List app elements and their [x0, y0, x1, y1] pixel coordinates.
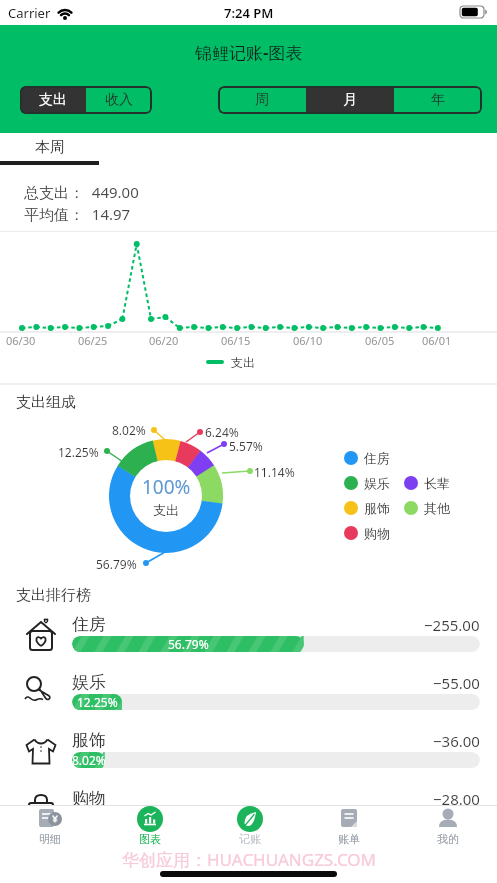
staticText: 平均值： 14.97 — [24, 204, 131, 224]
button[interactable]: 图表 — [100, 806, 200, 848]
staticText: 06/05 — [365, 333, 395, 348]
button[interactable]: 支出 — [20, 86, 86, 114]
staticText: 06/25 — [78, 333, 108, 348]
staticText: 5.57% — [229, 438, 263, 454]
button[interactable]: 娱乐 — [0, 668, 497, 726]
staticText: 年 — [431, 91, 445, 109]
button[interactable]: 月 — [306, 86, 394, 114]
staticText: 支出 — [153, 502, 179, 518]
staticText: 06/15 — [221, 333, 251, 348]
button[interactable]: 年 — [394, 86, 482, 114]
staticText: 图表 — [139, 832, 161, 846]
staticText: −55.00 — [433, 673, 480, 693]
staticText: 6.24% — [205, 424, 239, 440]
button[interactable]: 记账 — [200, 806, 299, 848]
staticText: 其他 — [424, 500, 450, 516]
staticText: 锦鲤记账-图表 — [195, 41, 303, 64]
staticText: 月 — [343, 91, 357, 109]
staticText: 支出 — [39, 91, 67, 109]
button[interactable]: 本周 — [0, 133, 99, 165]
staticText: Carrier — [8, 4, 51, 22]
button[interactable]: 明细 — [0, 806, 100, 848]
staticText: 华创应用：HUACHUANGZS.COM — [122, 848, 376, 871]
staticText: 服饰 — [364, 500, 390, 516]
staticText: 支出排行榜 — [16, 586, 91, 605]
staticText: 购物 — [72, 788, 106, 809]
staticText: 明细 — [39, 832, 61, 846]
staticText: 长辈 — [424, 475, 450, 491]
staticText: 周 — [255, 91, 269, 109]
button[interactable]: 账单 — [299, 806, 398, 848]
staticText: 8.02% — [112, 422, 146, 438]
staticText: 100% — [142, 474, 191, 500]
staticText: 住房 — [364, 450, 390, 466]
staticText: 支出组成 — [16, 393, 76, 412]
staticText: 7:24 PM — [224, 4, 274, 22]
staticText: 06/30 — [6, 333, 36, 348]
staticText: 收入 — [105, 91, 133, 109]
staticText: −255.00 — [424, 615, 480, 635]
staticText: 56.79% — [96, 556, 137, 572]
staticText: 11.14% — [254, 464, 295, 480]
staticText: 06/20 — [149, 333, 179, 348]
button[interactable]: 收入 — [86, 86, 152, 114]
staticText: 支出 — [231, 355, 255, 370]
button[interactable]: 服饰 — [0, 726, 497, 784]
staticText: 8.02% — [72, 752, 105, 768]
staticText: 账单 — [338, 832, 360, 846]
staticText: 56.79% — [168, 636, 209, 652]
staticText: 12.25% — [77, 694, 118, 710]
staticText: 06/10 — [293, 333, 323, 348]
staticText: 购物 — [364, 525, 390, 541]
staticText: 总支出： 449.00 — [24, 182, 139, 202]
staticText: −28.00 — [433, 789, 480, 809]
staticText: −36.00 — [433, 731, 480, 751]
staticText: 我的 — [437, 832, 459, 846]
staticText: 本周 — [35, 138, 65, 157]
button[interactable]: 购物 — [0, 784, 497, 842]
button[interactable]: 住房 — [0, 610, 497, 668]
staticText: 娱乐 — [364, 475, 390, 491]
staticText: 12.25% — [58, 444, 99, 460]
staticText: 06/01 — [422, 333, 452, 348]
staticText: 住房 — [72, 614, 106, 635]
staticText: 娱乐 — [72, 672, 106, 693]
button[interactable]: 周 — [218, 86, 306, 114]
button[interactable]: 我的 — [398, 806, 497, 848]
staticText: 记账 — [239, 832, 261, 846]
staticText: 服饰 — [72, 730, 106, 751]
